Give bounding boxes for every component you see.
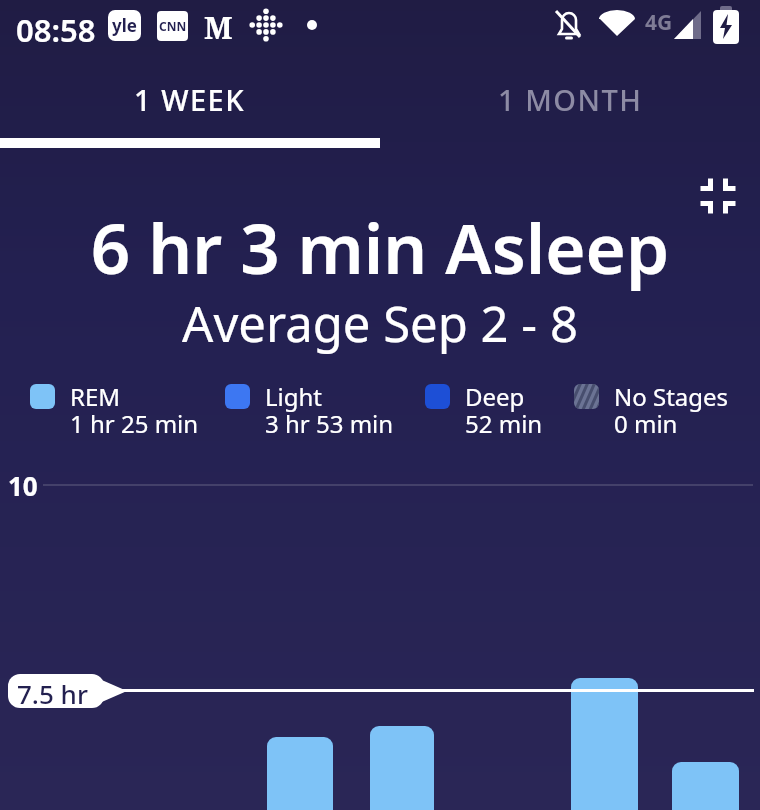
button[interactable]: 1 MONTH — [380, 60, 760, 138]
staticText: 1 WEEK — [134, 80, 246, 119]
staticText: No Stages — [614, 380, 729, 413]
staticText: 7.5 hr — [17, 676, 88, 711]
staticText: 6 hr 3 min Asleep — [0, 200, 760, 294]
staticText: CNN — [159, 18, 187, 34]
staticText: 08:58 — [16, 9, 96, 51]
staticText: Average Sep 2 - 8 — [0, 290, 760, 357]
staticText: 52 min — [465, 407, 543, 440]
staticText: yle — [112, 14, 137, 37]
button[interactable] — [690, 168, 746, 224]
button[interactable]: 1 WEEK — [0, 60, 380, 138]
staticText: 10 — [8, 468, 38, 503]
staticText: 1 hr 25 min — [70, 407, 199, 440]
staticText: Light — [265, 380, 323, 413]
staticText: 4G — [645, 8, 673, 37]
staticText: 3 hr 53 min — [265, 407, 394, 440]
staticText: Deep — [465, 380, 525, 413]
staticText: 0 min — [614, 407, 678, 440]
staticText: REM — [70, 380, 121, 413]
staticText: M — [204, 7, 233, 48]
staticText: 1 MONTH — [498, 80, 643, 119]
